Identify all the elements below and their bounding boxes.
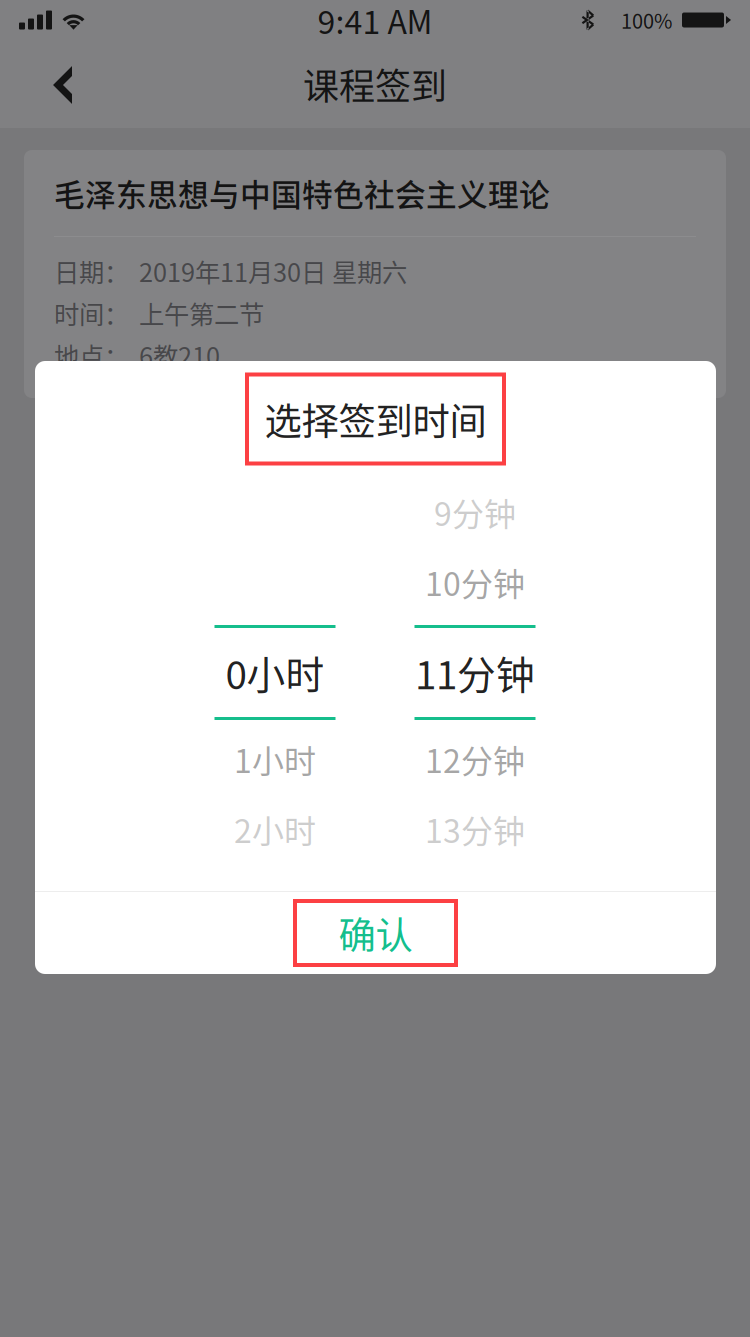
staticText: 地点： xyxy=(54,337,129,373)
staticText: 上午第二节 xyxy=(139,295,264,331)
staticText: 11分钟 xyxy=(415,644,535,700)
staticText: 0小时 xyxy=(225,644,324,700)
staticText: 12分钟 xyxy=(425,736,525,782)
staticText: 13分钟 xyxy=(425,806,525,852)
staticText: 1小时 xyxy=(234,736,316,782)
staticText: 时间： xyxy=(54,295,129,331)
staticText: 确认 xyxy=(338,906,412,960)
staticText: 2019年11月30日 星期六 xyxy=(139,253,407,289)
staticText: 毛泽东思想与中国特色社会主义理论 xyxy=(54,171,550,215)
staticText: 选择签到时间 xyxy=(264,392,486,446)
staticText: 10分钟 xyxy=(425,559,525,605)
staticText: 日期： xyxy=(54,253,129,289)
button[interactable]: 确认 xyxy=(35,892,716,974)
staticText: 2小时 xyxy=(234,806,316,852)
staticText: 100% xyxy=(621,5,672,34)
button[interactable]: 返回 xyxy=(0,40,110,128)
staticText: 6教210 xyxy=(139,337,220,373)
staticText: 9:41 AM xyxy=(317,0,432,43)
staticText: 9分钟 xyxy=(434,489,516,535)
staticText: 课程签到 xyxy=(303,58,447,110)
